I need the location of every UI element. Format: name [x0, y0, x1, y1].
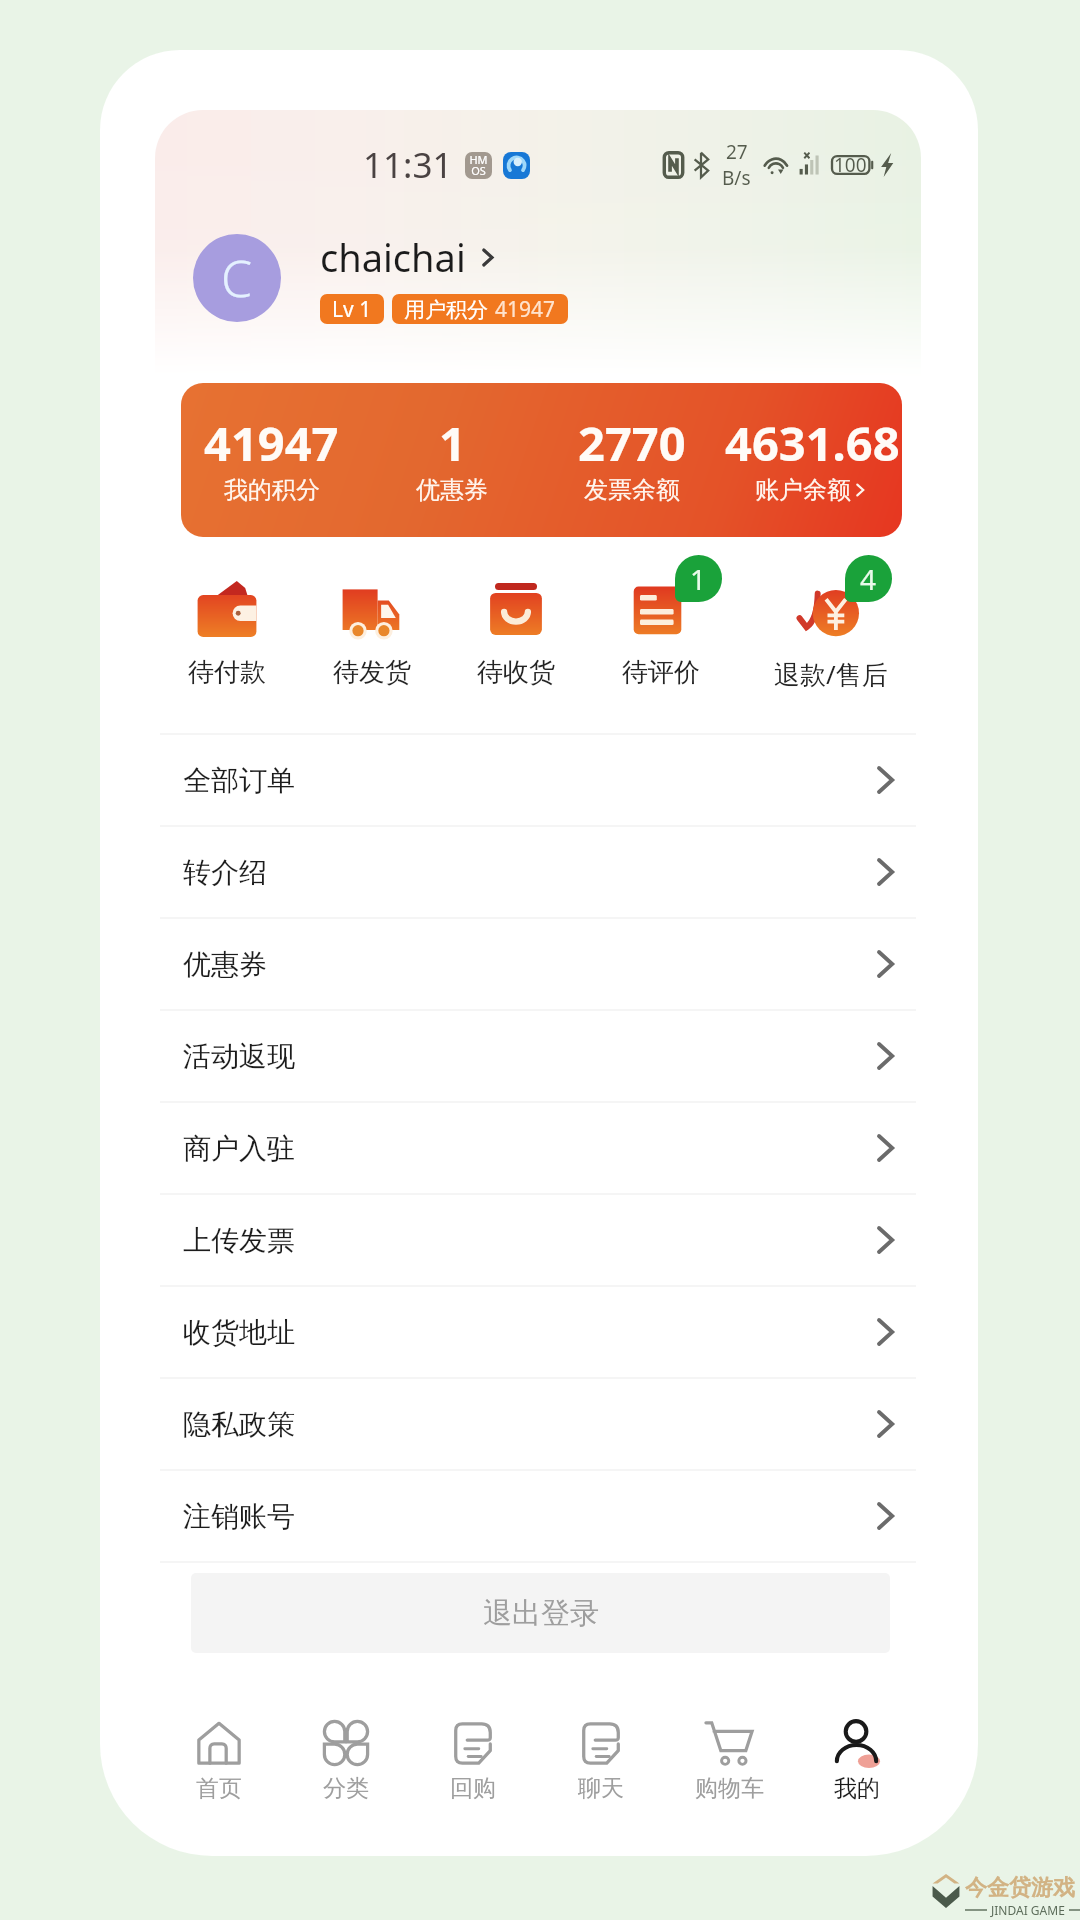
staticText: 商户入驻: [183, 1131, 295, 1166]
button[interactable]: 2770: [542, 383, 722, 537]
button[interactable]: 转介绍: [155, 827, 921, 917]
button[interactable]: 注销账号: [155, 1471, 921, 1561]
button[interactable]: 4: [766, 572, 896, 692]
staticText: HM OS: [469, 152, 488, 179]
button[interactable]: 41947: [181, 383, 902, 537]
staticText: 今金贷游戏: [965, 1874, 1075, 1902]
staticText: Lv 1: [332, 295, 372, 324]
button[interactable]: 分类: [282, 1680, 409, 1820]
button[interactable]: 我的: [793, 1680, 921, 1820]
staticText: JINDAI GAME: [991, 1902, 1065, 1918]
staticText: 聊天: [578, 1774, 624, 1803]
button[interactable]: Lv 1: [320, 294, 384, 324]
staticText: 活动返现: [183, 1039, 295, 1074]
staticText: 待评价: [622, 656, 700, 689]
staticText: 购物车: [695, 1774, 764, 1803]
staticText: 转介绍: [183, 855, 267, 890]
button[interactable]: Avatar: [193, 234, 281, 322]
staticText: chaichai: [320, 231, 466, 283]
staticText: 待收货: [477, 656, 555, 689]
button[interactable]: 1: [362, 383, 542, 537]
button[interactable]: 首页: [155, 1680, 282, 1820]
staticText: 分类: [323, 1774, 369, 1803]
button[interactable]: 用户积分: [392, 294, 568, 324]
staticText: 27: [726, 139, 748, 165]
staticText: 优惠券: [183, 947, 267, 982]
staticText: 退出登录: [483, 1595, 599, 1632]
staticText: C: [221, 244, 253, 312]
staticText: 11:31: [363, 141, 453, 189]
button[interactable]: 收货地址: [155, 1287, 921, 1377]
button[interactable]: 商户入驻: [155, 1103, 921, 1193]
staticText: 用户积分: [404, 297, 488, 323]
staticText: 全部订单: [183, 763, 295, 798]
staticText: 我的积分: [224, 475, 320, 505]
staticText: 我的: [834, 1774, 880, 1803]
button[interactable]: 1: [622, 572, 700, 689]
staticText: 100: [834, 152, 867, 178]
staticText: 收货地址: [183, 1315, 295, 1350]
button[interactable]: 优惠券: [155, 919, 921, 1009]
staticText: 1: [690, 560, 707, 598]
button[interactable]: 待发货: [333, 572, 411, 689]
button[interactable]: 隐私政策: [155, 1379, 921, 1469]
button[interactable]: 上传发票: [155, 1195, 921, 1285]
staticText: 41947: [204, 411, 339, 475]
staticText: 账户余额: [755, 475, 851, 505]
staticText: 注销账号: [183, 1499, 295, 1534]
staticText: 上传发票: [183, 1223, 295, 1258]
staticText: 首页: [196, 1774, 242, 1803]
button[interactable]: 回购: [409, 1680, 537, 1820]
button[interactable]: 待付款: [188, 572, 266, 689]
button[interactable]: chaichai: [320, 231, 500, 283]
button[interactable]: 聊天: [537, 1680, 665, 1820]
staticText: 4: [860, 560, 877, 598]
button[interactable]: 41947: [181, 383, 362, 537]
button[interactable]: 全部订单: [155, 735, 921, 825]
staticText: 41947: [495, 295, 556, 324]
staticText: 隐私政策: [183, 1407, 295, 1442]
button[interactable]: 4631.68: [722, 383, 902, 537]
staticText: 退款/售后: [774, 656, 888, 692]
staticText: 1: [439, 411, 466, 475]
staticText: 待发货: [333, 656, 411, 689]
staticText: 发票余额: [584, 475, 680, 505]
button[interactable]: 待收货: [477, 572, 555, 689]
button[interactable]: 购物车: [665, 1680, 793, 1820]
button[interactable]: 退出登录: [191, 1573, 890, 1653]
staticText: B/s: [722, 165, 751, 191]
staticText: 待付款: [188, 656, 266, 689]
staticText: 回购: [450, 1774, 496, 1803]
staticText: 优惠券: [416, 475, 488, 505]
staticText: 4631.68: [725, 411, 900, 475]
staticText: 2770: [578, 411, 686, 475]
button[interactable]: 活动返现: [155, 1011, 921, 1101]
